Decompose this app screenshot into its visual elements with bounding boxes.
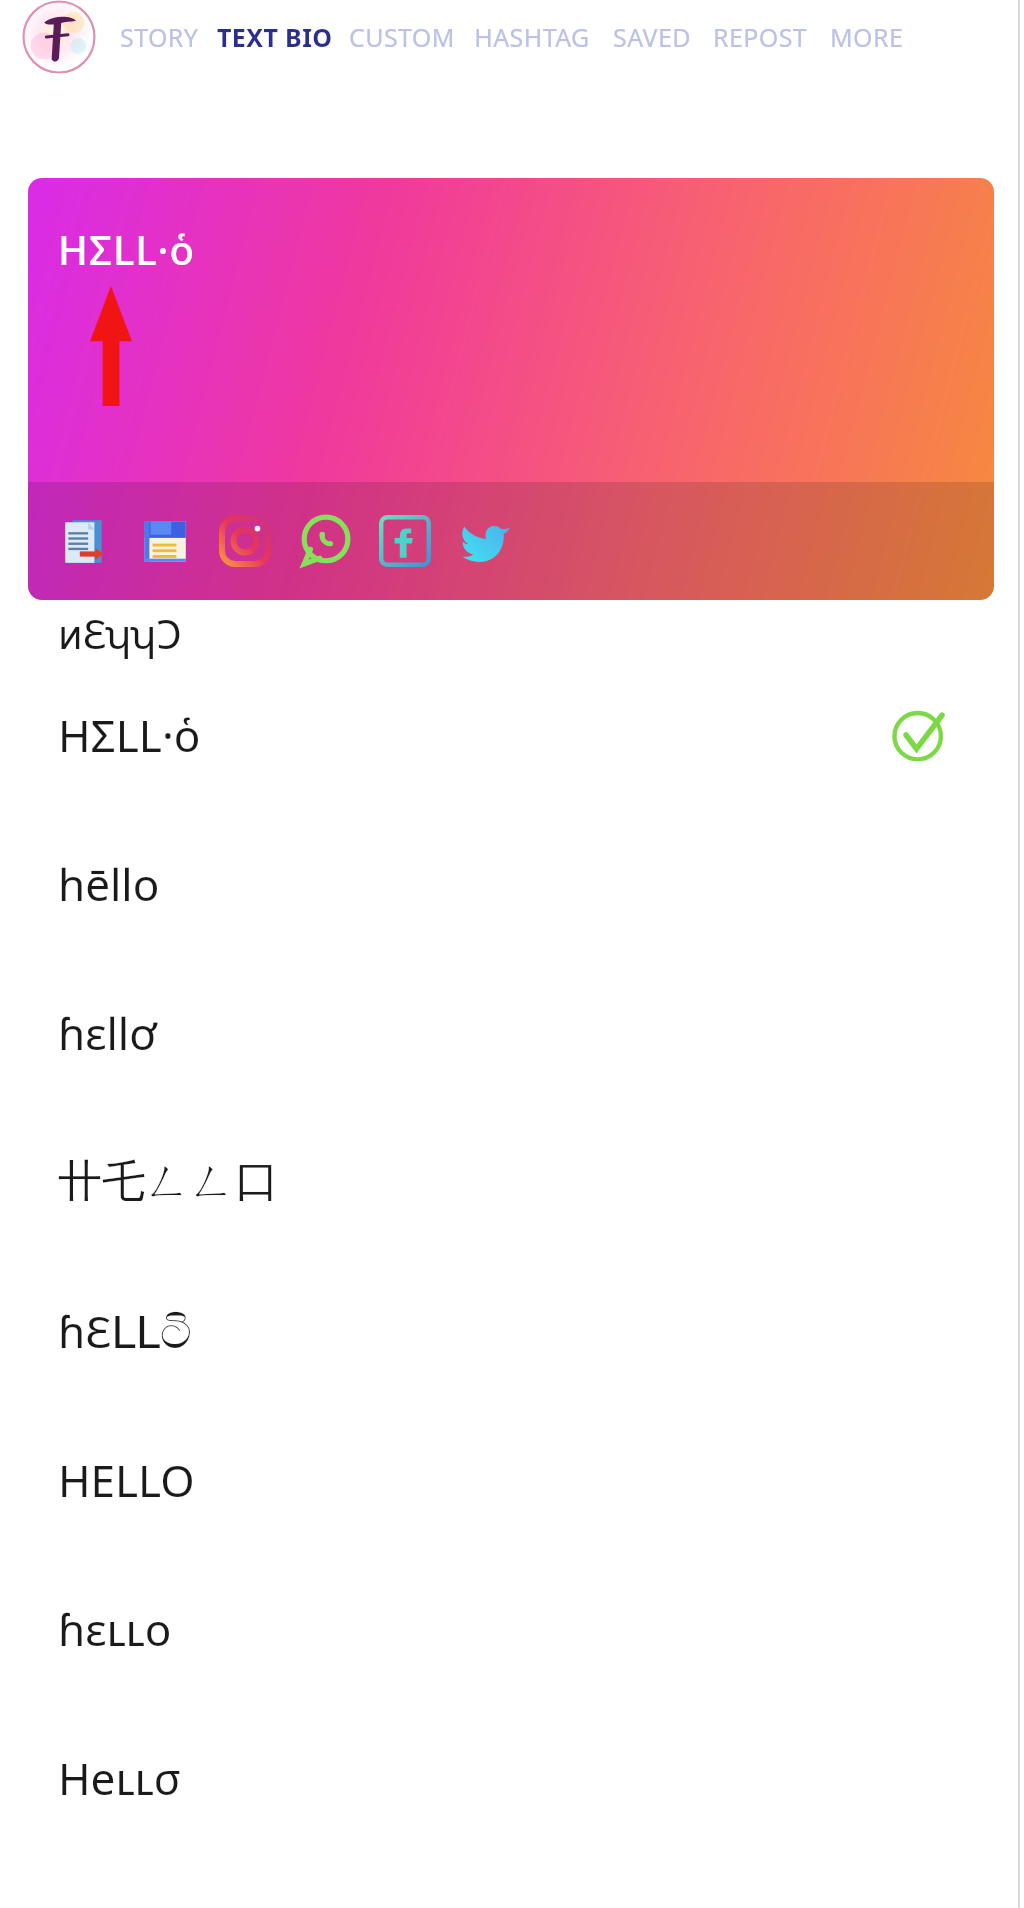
button[interactable]: Profile	[22, 0, 96, 74]
button[interactable]: hēllo	[0, 809, 1024, 958]
other: Selected	[888, 703, 952, 767]
button[interactable]: Facebook	[376, 512, 434, 570]
staticText: HASHTAG	[473, 20, 591, 54]
staticText: SAVED	[613, 20, 691, 54]
button[interactable]: ɦɛʟʟo	[0, 1554, 1024, 1703]
staticText: HELLO	[58, 1450, 195, 1510]
staticText: Heʟʟσ	[58, 1748, 181, 1808]
button[interactable]: STORY	[120, 12, 199, 62]
staticText: ɦƐᒪᒪටි	[58, 1301, 192, 1361]
button[interactable]: REPOST	[713, 12, 808, 62]
button[interactable]: ɦƐᒪᒪටි	[0, 1256, 1024, 1405]
button[interactable]: HΣLL·ὁ	[0, 660, 1024, 809]
staticText: hēllo	[58, 854, 160, 914]
staticText: STORY	[120, 20, 199, 54]
staticText: CUSTOM	[349, 20, 455, 54]
button[interactable]: ɦɛllơ	[0, 958, 1024, 1107]
staticText: ɦɛʟʟo	[58, 1599, 172, 1659]
button[interactable]: Save	[136, 512, 194, 570]
staticText: ᴎƐʮʮƆ	[58, 606, 182, 660]
staticText: HΣLL·ὁ	[58, 705, 201, 765]
button[interactable]: HELLO	[0, 1405, 1024, 1554]
button[interactable]: Twitter	[456, 512, 514, 570]
staticText: ɦɛllơ	[58, 1003, 157, 1063]
button[interactable]: MORE	[830, 12, 904, 62]
staticText: REPOST	[713, 20, 808, 54]
button[interactable]: Heʟʟσ	[0, 1703, 1024, 1852]
staticText: MORE	[830, 20, 904, 54]
button[interactable]: WhatsApp	[296, 512, 354, 570]
button[interactable]: Instagram	[216, 512, 274, 570]
button[interactable]: HASHTAG	[473, 20, 591, 54]
staticText: TEXT BIO	[217, 20, 333, 54]
button[interactable]: CUSTOM	[349, 12, 455, 62]
staticText: 卄乇ㄥㄥ口	[58, 1154, 280, 1209]
button[interactable]: HΣLL·ὁ	[28, 178, 994, 600]
button[interactable]: 卄乇ㄥㄥ口	[0, 1107, 1024, 1256]
button[interactable]: ᴎƐʮʮƆ	[0, 600, 1024, 660]
button[interactable]: SAVED	[613, 12, 691, 62]
button[interactable]: TEXT BIO	[217, 12, 333, 62]
button[interactable]: Copy	[56, 512, 114, 570]
staticText: HΣLL·ὁ	[58, 222, 195, 276]
